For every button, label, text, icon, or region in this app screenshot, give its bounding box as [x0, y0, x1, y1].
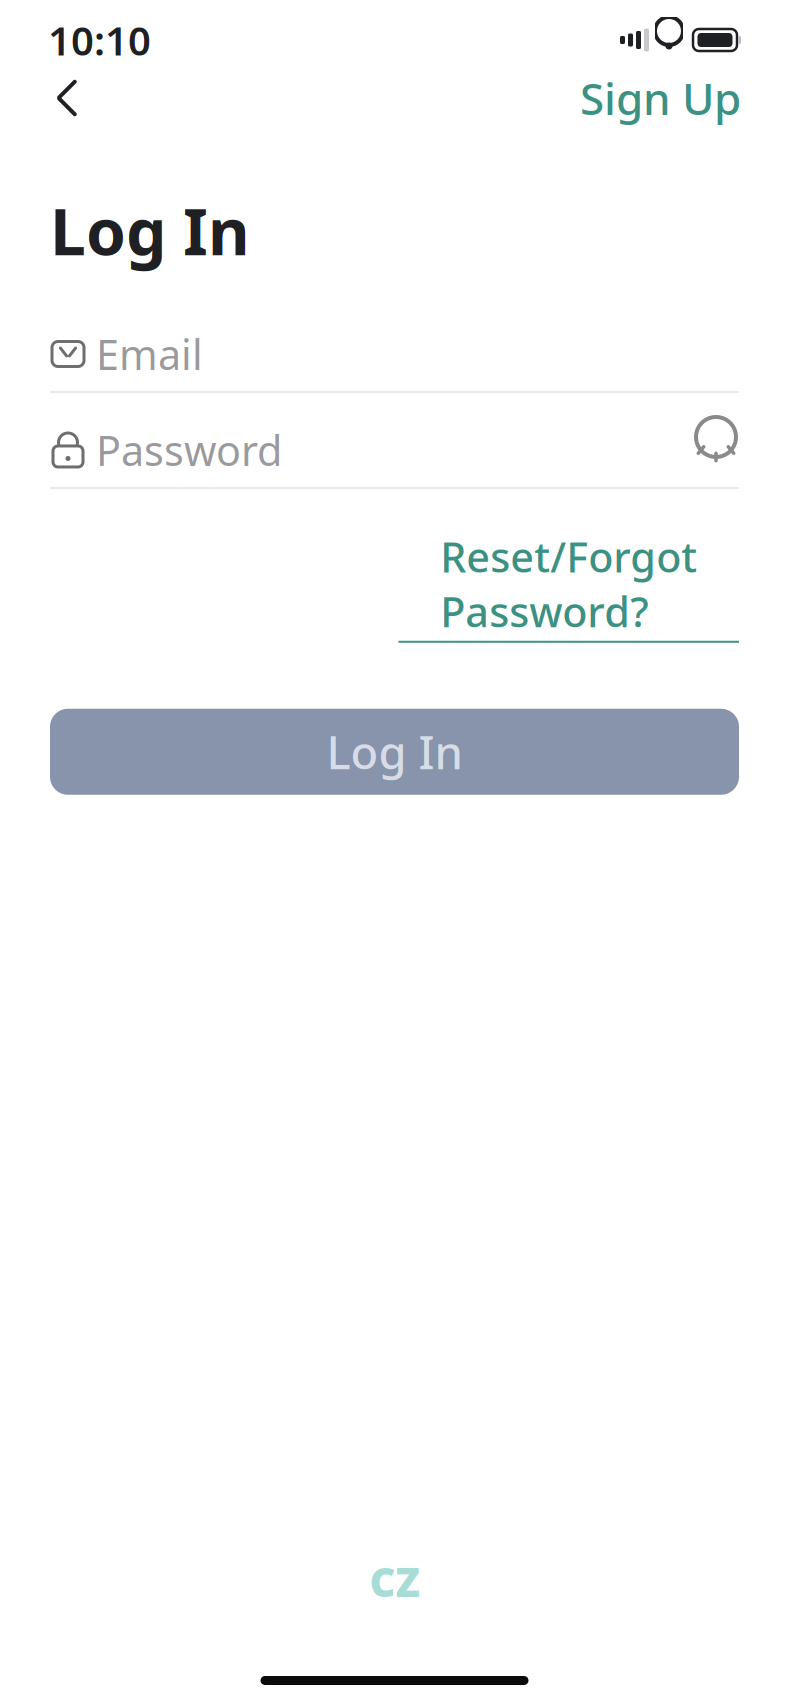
button[interactable]: Back — [42, 70, 92, 126]
staticText: Log In — [326, 722, 462, 782]
button[interactable]: Sign Up — [574, 63, 747, 133]
staticText: Reset/Forgot Password? — [440, 529, 697, 639]
staticText: Password — [96, 422, 282, 477]
staticText: Email — [96, 326, 203, 381]
staticText: 10:10 — [48, 13, 151, 66]
button[interactable]: Show password — [677, 422, 739, 478]
staticText: CZ — [369, 1555, 419, 1608]
button[interactable]: Log In — [50, 709, 739, 795]
staticText: Log In — [50, 188, 250, 273]
staticText: Sign Up — [580, 69, 741, 127]
button[interactable]: Reset/Forgot Password? — [398, 523, 739, 649]
